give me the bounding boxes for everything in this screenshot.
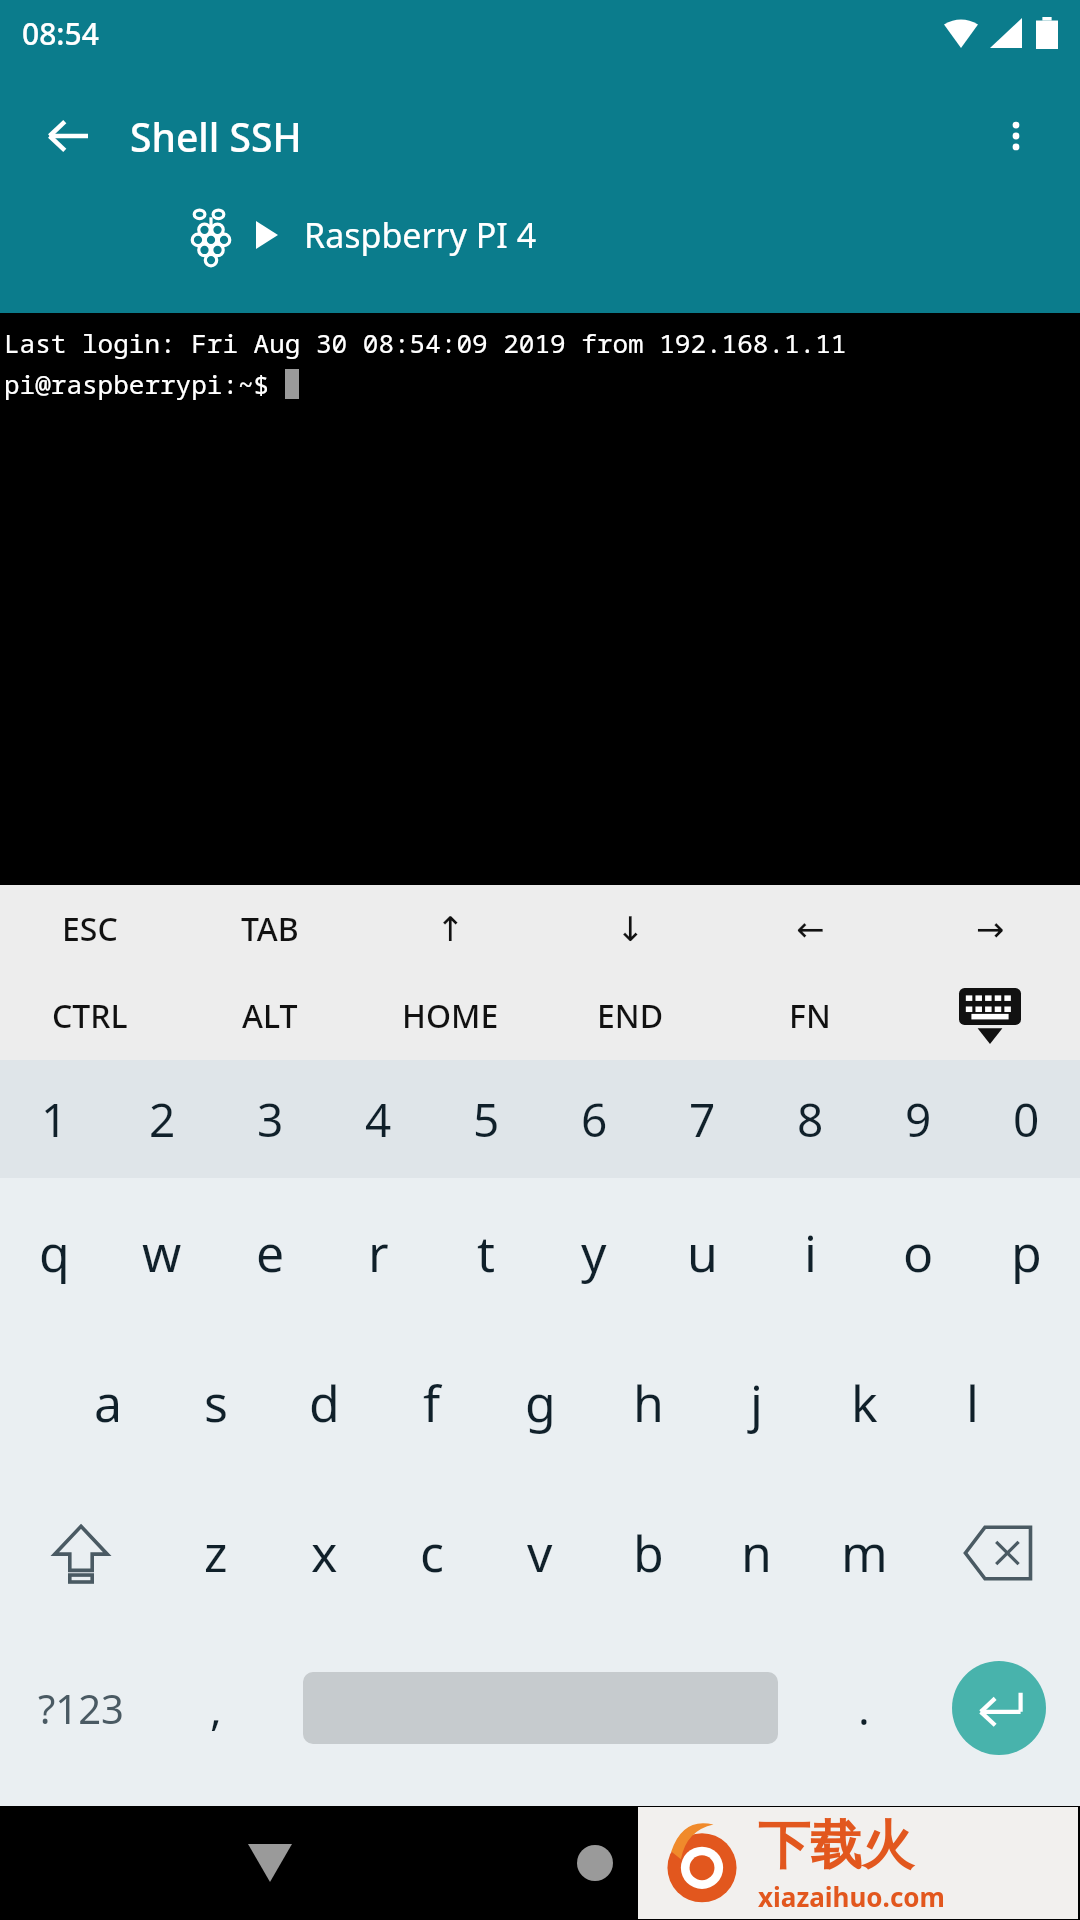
staticText: e (256, 1219, 285, 1287)
button[interactable]: u (648, 1178, 756, 1328)
button[interactable]: d (270, 1328, 378, 1478)
button[interactable]: Back (215, 1808, 325, 1918)
button[interactable]: x (270, 1478, 378, 1628)
button[interactable]: n (702, 1478, 810, 1628)
staticText: 6 (581, 1088, 608, 1151)
staticText: i (804, 1219, 817, 1287)
button[interactable]: e (216, 1178, 324, 1328)
button[interactable]: m (810, 1478, 918, 1628)
staticText: ↑ (436, 909, 465, 949)
button[interactable]: → (900, 885, 1080, 972)
staticText: HOME (402, 994, 499, 1038)
staticText: 08:54 (22, 13, 99, 54)
staticText: Raspberry PI 4 (304, 212, 537, 258)
button[interactable]: More options (982, 102, 1050, 170)
staticText: m (841, 1519, 888, 1587)
button[interactable]: g (486, 1328, 594, 1478)
button[interactable]: CTRL (0, 972, 180, 1060)
button[interactable]: HOME (360, 972, 540, 1060)
button[interactable]: i (756, 1178, 864, 1328)
button[interactable]: w (108, 1178, 216, 1328)
staticText: v (527, 1519, 553, 1587)
button[interactable]: ← (720, 885, 900, 972)
button[interactable] (270, 1628, 810, 1788)
button[interactable]: Last login: Fri Aug 30 08:54:09 2019 fro… (0, 313, 1080, 885)
staticText: y (581, 1219, 607, 1287)
button[interactable]: s (162, 1328, 270, 1478)
staticText: d (309, 1369, 340, 1437)
staticText: q (39, 1219, 70, 1287)
staticText: 9 (905, 1088, 932, 1151)
button[interactable]: Backspace (918, 1478, 1080, 1628)
button[interactable]: Hide keyboard (900, 972, 1080, 1060)
staticText: 4 (365, 1088, 392, 1151)
button[interactable]: FN (720, 972, 900, 1060)
button[interactable]: ↓ (540, 885, 720, 972)
staticText: ALT (242, 994, 298, 1038)
staticText: p (1011, 1219, 1042, 1287)
button[interactable]: o (864, 1178, 972, 1328)
staticText: j (750, 1369, 763, 1437)
staticText: 8 (797, 1088, 824, 1151)
staticText: → (976, 909, 1005, 949)
button[interactable]: 7 (648, 1060, 756, 1178)
staticText: TAB (241, 907, 299, 951)
button[interactable]: j (702, 1328, 810, 1478)
button[interactable]: 6 (540, 1060, 648, 1178)
button[interactable]: ?123 (0, 1628, 162, 1788)
button[interactable]: Raspberry PI 4 (0, 198, 1080, 272)
staticText: h (633, 1369, 664, 1437)
button[interactable]: c (378, 1478, 486, 1628)
button[interactable]: ALT (180, 972, 360, 1060)
staticText: ESC (62, 907, 118, 951)
staticText: 0 (1013, 1088, 1040, 1151)
button[interactable]: 0 (972, 1060, 1080, 1178)
staticText: ← (796, 909, 825, 949)
button[interactable]: k (810, 1328, 918, 1478)
button[interactable]: z (162, 1478, 270, 1628)
button[interactable]: . (810, 1628, 918, 1788)
staticText: n (741, 1519, 772, 1587)
button[interactable]: 1 (0, 1060, 108, 1178)
staticText: x (311, 1519, 338, 1587)
button[interactable]: t (432, 1178, 540, 1328)
button[interactable]: h (594, 1328, 702, 1478)
staticText: 3 (257, 1088, 284, 1151)
button[interactable]: 8 (756, 1060, 864, 1178)
button[interactable]: , (162, 1628, 270, 1788)
staticText: 下载火 (758, 1813, 914, 1879)
staticText: b (633, 1519, 664, 1587)
staticText: t (477, 1219, 496, 1287)
staticText: c (420, 1519, 444, 1587)
button[interactable]: Shift (0, 1478, 162, 1628)
button[interactable]: 5 (432, 1060, 540, 1178)
button[interactable]: TAB (180, 885, 360, 972)
staticText: pi@raspberrypi:~$ (4, 366, 285, 401)
button[interactable]: a (54, 1328, 162, 1478)
staticText: Last login: Fri Aug 30 08:54:09 2019 fro… (4, 325, 847, 360)
button[interactable]: 4 (324, 1060, 432, 1178)
button[interactable]: r (324, 1178, 432, 1328)
button[interactable]: v (486, 1478, 594, 1628)
button[interactable]: y (540, 1178, 648, 1328)
button[interactable]: ↑ (360, 885, 540, 972)
button[interactable]: b (594, 1478, 702, 1628)
button[interactable]: p (972, 1178, 1080, 1328)
button[interactable]: 2 (108, 1060, 216, 1178)
button[interactable]: q (0, 1178, 108, 1328)
button[interactable]: Home (540, 1808, 650, 1918)
staticText: END (597, 994, 664, 1038)
staticText: , (210, 1678, 222, 1738)
button[interactable]: ESC (0, 885, 180, 972)
button[interactable]: 3 (216, 1060, 324, 1178)
button[interactable]: Back (34, 102, 102, 170)
button[interactable]: l (918, 1328, 1026, 1478)
staticText: 7 (689, 1088, 716, 1151)
staticText: w (142, 1219, 182, 1287)
button[interactable]: f (378, 1328, 486, 1478)
staticText: xiazaihuo.com (758, 1879, 945, 1914)
staticText: a (94, 1369, 123, 1437)
button[interactable]: Enter (952, 1661, 1046, 1755)
button[interactable]: 9 (864, 1060, 972, 1178)
button[interactable]: END (540, 972, 720, 1060)
